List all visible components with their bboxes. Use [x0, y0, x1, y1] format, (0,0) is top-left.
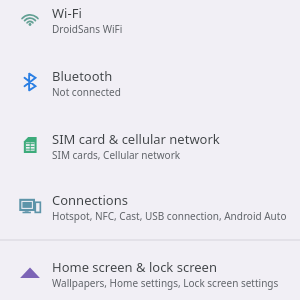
other: Home screen and lock screen settings: [19, 262, 41, 284]
staticText: Wi-Fi: [52, 4, 82, 22]
staticText: Wallpapers, Home settings, Lock screen s…: [52, 276, 279, 290]
other: SIM card and cellular network settings: [19, 134, 41, 156]
staticText: Not connected: [52, 85, 121, 99]
staticText: SIM card & cellular network: [52, 130, 220, 148]
other: Bluetooth settings: [19, 71, 41, 93]
button[interactable]: Connections settings: [0, 191, 300, 223]
staticText: Home screen & lock screen: [52, 258, 217, 276]
staticText: Connections: [52, 191, 128, 209]
other: Wi-Fi settings: [19, 8, 41, 30]
staticText: SIM cards, Cellular network: [52, 148, 181, 162]
button[interactable]: Bluetooth settings: [0, 67, 300, 99]
other: Connections settings: [19, 195, 41, 217]
staticText: Bluetooth: [52, 67, 113, 85]
staticText: DroidSans WiFi: [52, 22, 123, 36]
button[interactable]: SIM card and cellular network settings: [0, 130, 300, 162]
button[interactable]: Home screen and lock screen settings: [0, 258, 300, 290]
button[interactable]: Wi-Fi settings: [0, 4, 300, 36]
staticText: Hotspot, NFC, Cast, USB connection, Andr…: [52, 209, 287, 223]
